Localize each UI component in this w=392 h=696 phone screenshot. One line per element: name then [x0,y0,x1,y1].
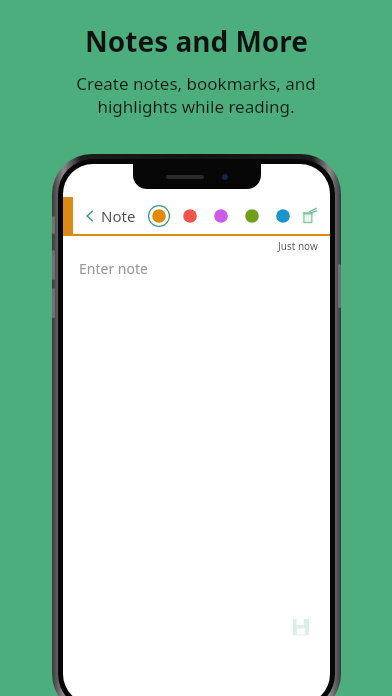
button[interactable]: Highlight colour [210,205,232,227]
button[interactable]: Delete note [296,203,322,229]
button[interactable]: Highlight colour [272,205,294,227]
button[interactable]: Highlight colour [179,205,201,227]
staticText: Note [101,206,136,226]
staticText: Enter note [79,259,148,278]
button[interactable]: Highlight colour [148,205,170,227]
staticText: Just now [278,239,318,253]
button[interactable]: Highlight colour [241,205,263,227]
button[interactable]: Save note [290,616,312,638]
staticText: Create notes, bookmarks, and highlights … [76,72,316,118]
staticText: Notes and More [85,22,308,60]
button[interactable]: Enter note [63,257,330,696]
button[interactable]: Note [81,202,138,230]
